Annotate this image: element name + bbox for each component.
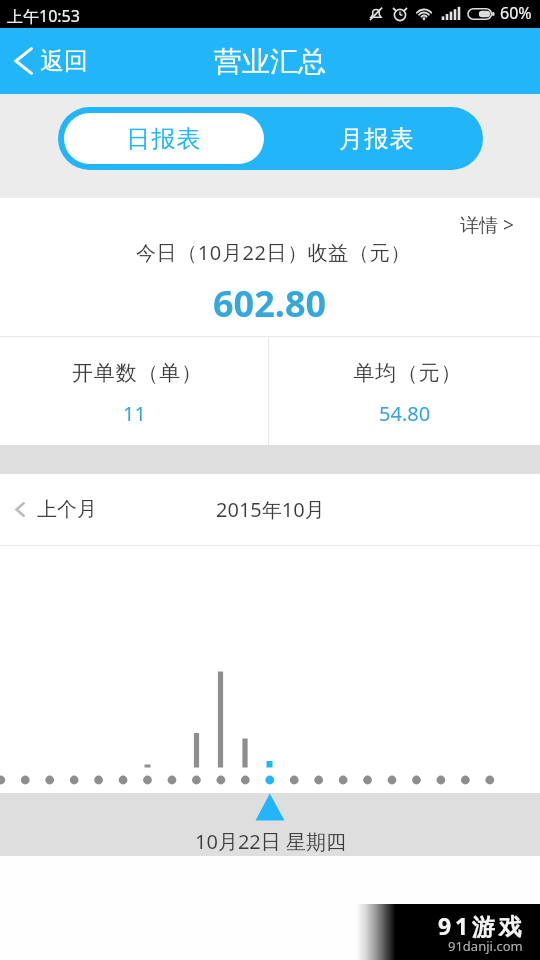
other: 返回 — [14, 47, 33, 75]
staticText: 今日（10月22日）收益（元） — [136, 239, 411, 266]
staticText: 54.80 — [379, 400, 431, 427]
staticText: 营业汇总 — [214, 44, 326, 79]
staticText: 单均（元） — [353, 360, 462, 386]
button[interactable]: 开单数（单） — [0, 337, 269, 445]
staticText: 11 — [123, 400, 146, 427]
staticText: 91danji.com — [448, 937, 523, 955]
staticText: 返回 — [40, 46, 88, 76]
staticText: 602.80 — [213, 279, 327, 328]
button[interactable]: 每日收益柱状图 — [0, 546, 540, 793]
button[interactable]: 返回 — [0, 28, 106, 94]
button[interactable]: 上个月 — [0, 474, 115, 545]
staticText: 上个月 — [37, 497, 97, 522]
staticText: 10月22日 星期四 — [195, 828, 346, 855]
staticText: 2015年10月 — [216, 496, 325, 523]
button[interactable]: 月报表 — [270, 107, 483, 170]
staticText: 91游戏 — [438, 910, 526, 941]
button[interactable]: 日报表 — [64, 113, 264, 164]
button[interactable]: 单均（元） — [269, 337, 540, 445]
button[interactable]: 详情 > — [438, 198, 540, 248]
other: 上个月 — [15, 502, 25, 517]
staticText: 日报表 — [126, 124, 202, 154]
staticText: 60% — [500, 2, 532, 24]
staticText: 上午10:53 — [7, 5, 80, 27]
staticText: 开单数（单） — [72, 360, 203, 386]
staticText: 月报表 — [339, 124, 415, 154]
